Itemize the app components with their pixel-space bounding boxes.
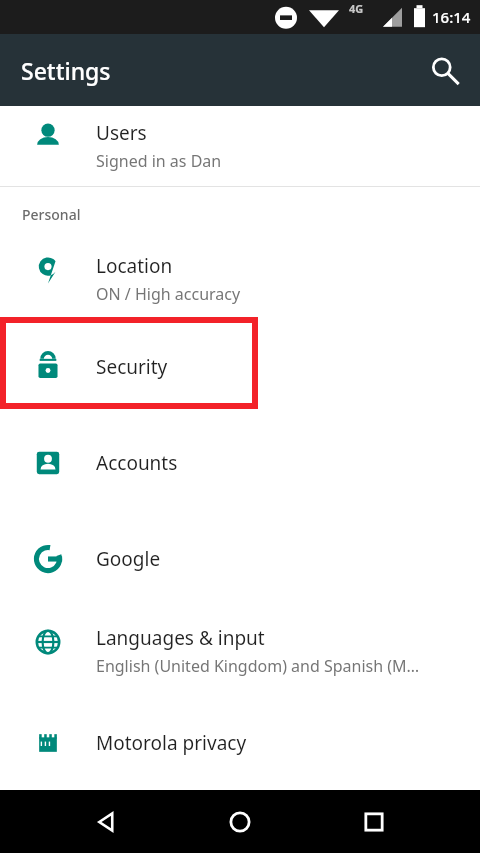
- staticText: Location: [96, 253, 173, 279]
- staticText: ON / High accuracy: [96, 283, 241, 305]
- button[interactable]: Security: [0, 319, 480, 415]
- staticText: Accounts: [96, 450, 178, 476]
- staticText: 16:14: [432, 7, 471, 27]
- button[interactable]: Recent apps: [346, 794, 402, 850]
- staticText: 4G: [349, 1, 364, 16]
- staticText: Motorola privacy: [96, 730, 247, 756]
- button[interactable]: Back: [78, 794, 134, 850]
- button[interactable]: Users: [0, 106, 480, 186]
- button[interactable]: Location: [0, 239, 480, 319]
- staticText: Google: [96, 546, 161, 572]
- staticText: Signed in as Dan: [96, 150, 222, 172]
- button[interactable]: Languages & input: [0, 607, 480, 695]
- staticText: Languages & input: [96, 625, 265, 651]
- button[interactable]: Home: [212, 794, 268, 850]
- button[interactable]: Motorola privacy: [0, 695, 480, 790]
- staticText: Users: [96, 120, 147, 146]
- button[interactable]: Google: [0, 511, 480, 607]
- button[interactable]: Accounts: [0, 415, 480, 511]
- staticText: English (United Kingdom) and Spanish (M…: [96, 655, 420, 677]
- staticText: Personal: [22, 205, 81, 224]
- staticText: Security: [96, 354, 168, 380]
- staticText: Settings: [21, 55, 111, 86]
- button[interactable]: Search: [417, 43, 471, 97]
